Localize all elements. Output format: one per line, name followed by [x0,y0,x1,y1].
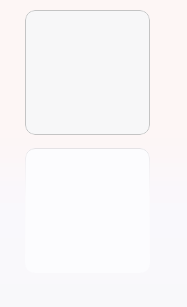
button[interactable]: Outlined card [25,10,150,135]
